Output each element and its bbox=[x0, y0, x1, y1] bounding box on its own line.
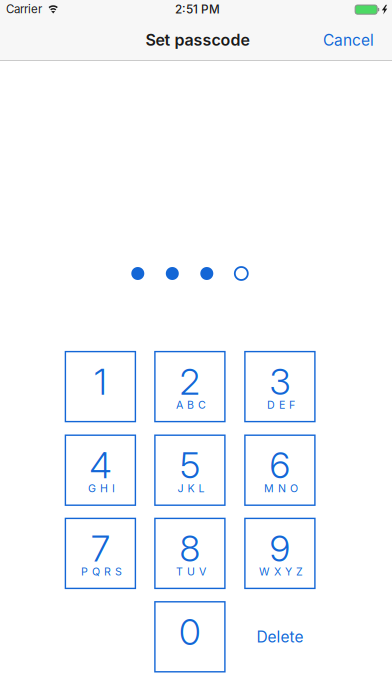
staticText: Set passcode bbox=[146, 30, 250, 50]
staticText: 0 bbox=[179, 610, 201, 654]
staticText: W X Y Z bbox=[259, 565, 303, 578]
staticText: 3 bbox=[269, 360, 290, 403]
staticText: 1 bbox=[94, 360, 107, 403]
button[interactable]: 7 bbox=[65, 518, 135, 588]
staticText: A B C bbox=[176, 398, 206, 411]
staticText: 6 bbox=[269, 443, 290, 487]
staticText: 2 bbox=[179, 360, 200, 403]
staticText: Delete bbox=[256, 627, 303, 646]
staticText: 4 bbox=[89, 443, 111, 487]
staticText: 2:51 PM bbox=[175, 2, 220, 16]
button[interactable]: 4 bbox=[65, 435, 135, 505]
staticText: 8 bbox=[179, 527, 200, 570]
button[interactable]: Cancel bbox=[294, 20, 374, 60]
staticText: 7 bbox=[91, 527, 110, 570]
button[interactable]: Delete bbox=[237, 602, 323, 672]
staticText: M N O bbox=[264, 482, 298, 495]
staticText: J K L bbox=[178, 482, 205, 495]
button[interactable]: 0 bbox=[155, 602, 225, 672]
button[interactable]: 5 bbox=[155, 435, 225, 505]
staticText: Carrier bbox=[6, 2, 42, 16]
button[interactable]: 1 bbox=[65, 352, 135, 422]
staticText: 9 bbox=[269, 527, 290, 570]
button[interactable]: 9 bbox=[245, 518, 315, 588]
staticText: G H I bbox=[88, 482, 115, 495]
staticText: Cancel bbox=[323, 31, 374, 49]
button[interactable]: 8 bbox=[155, 518, 225, 588]
button[interactable]: 3 bbox=[245, 352, 315, 422]
staticText: D E F bbox=[267, 398, 295, 411]
button[interactable]: 6 bbox=[245, 435, 315, 505]
staticText: P Q R S bbox=[81, 565, 122, 578]
staticText: 5 bbox=[180, 443, 200, 487]
staticText: T U V bbox=[176, 565, 206, 578]
button[interactable]: 2 bbox=[155, 352, 225, 422]
